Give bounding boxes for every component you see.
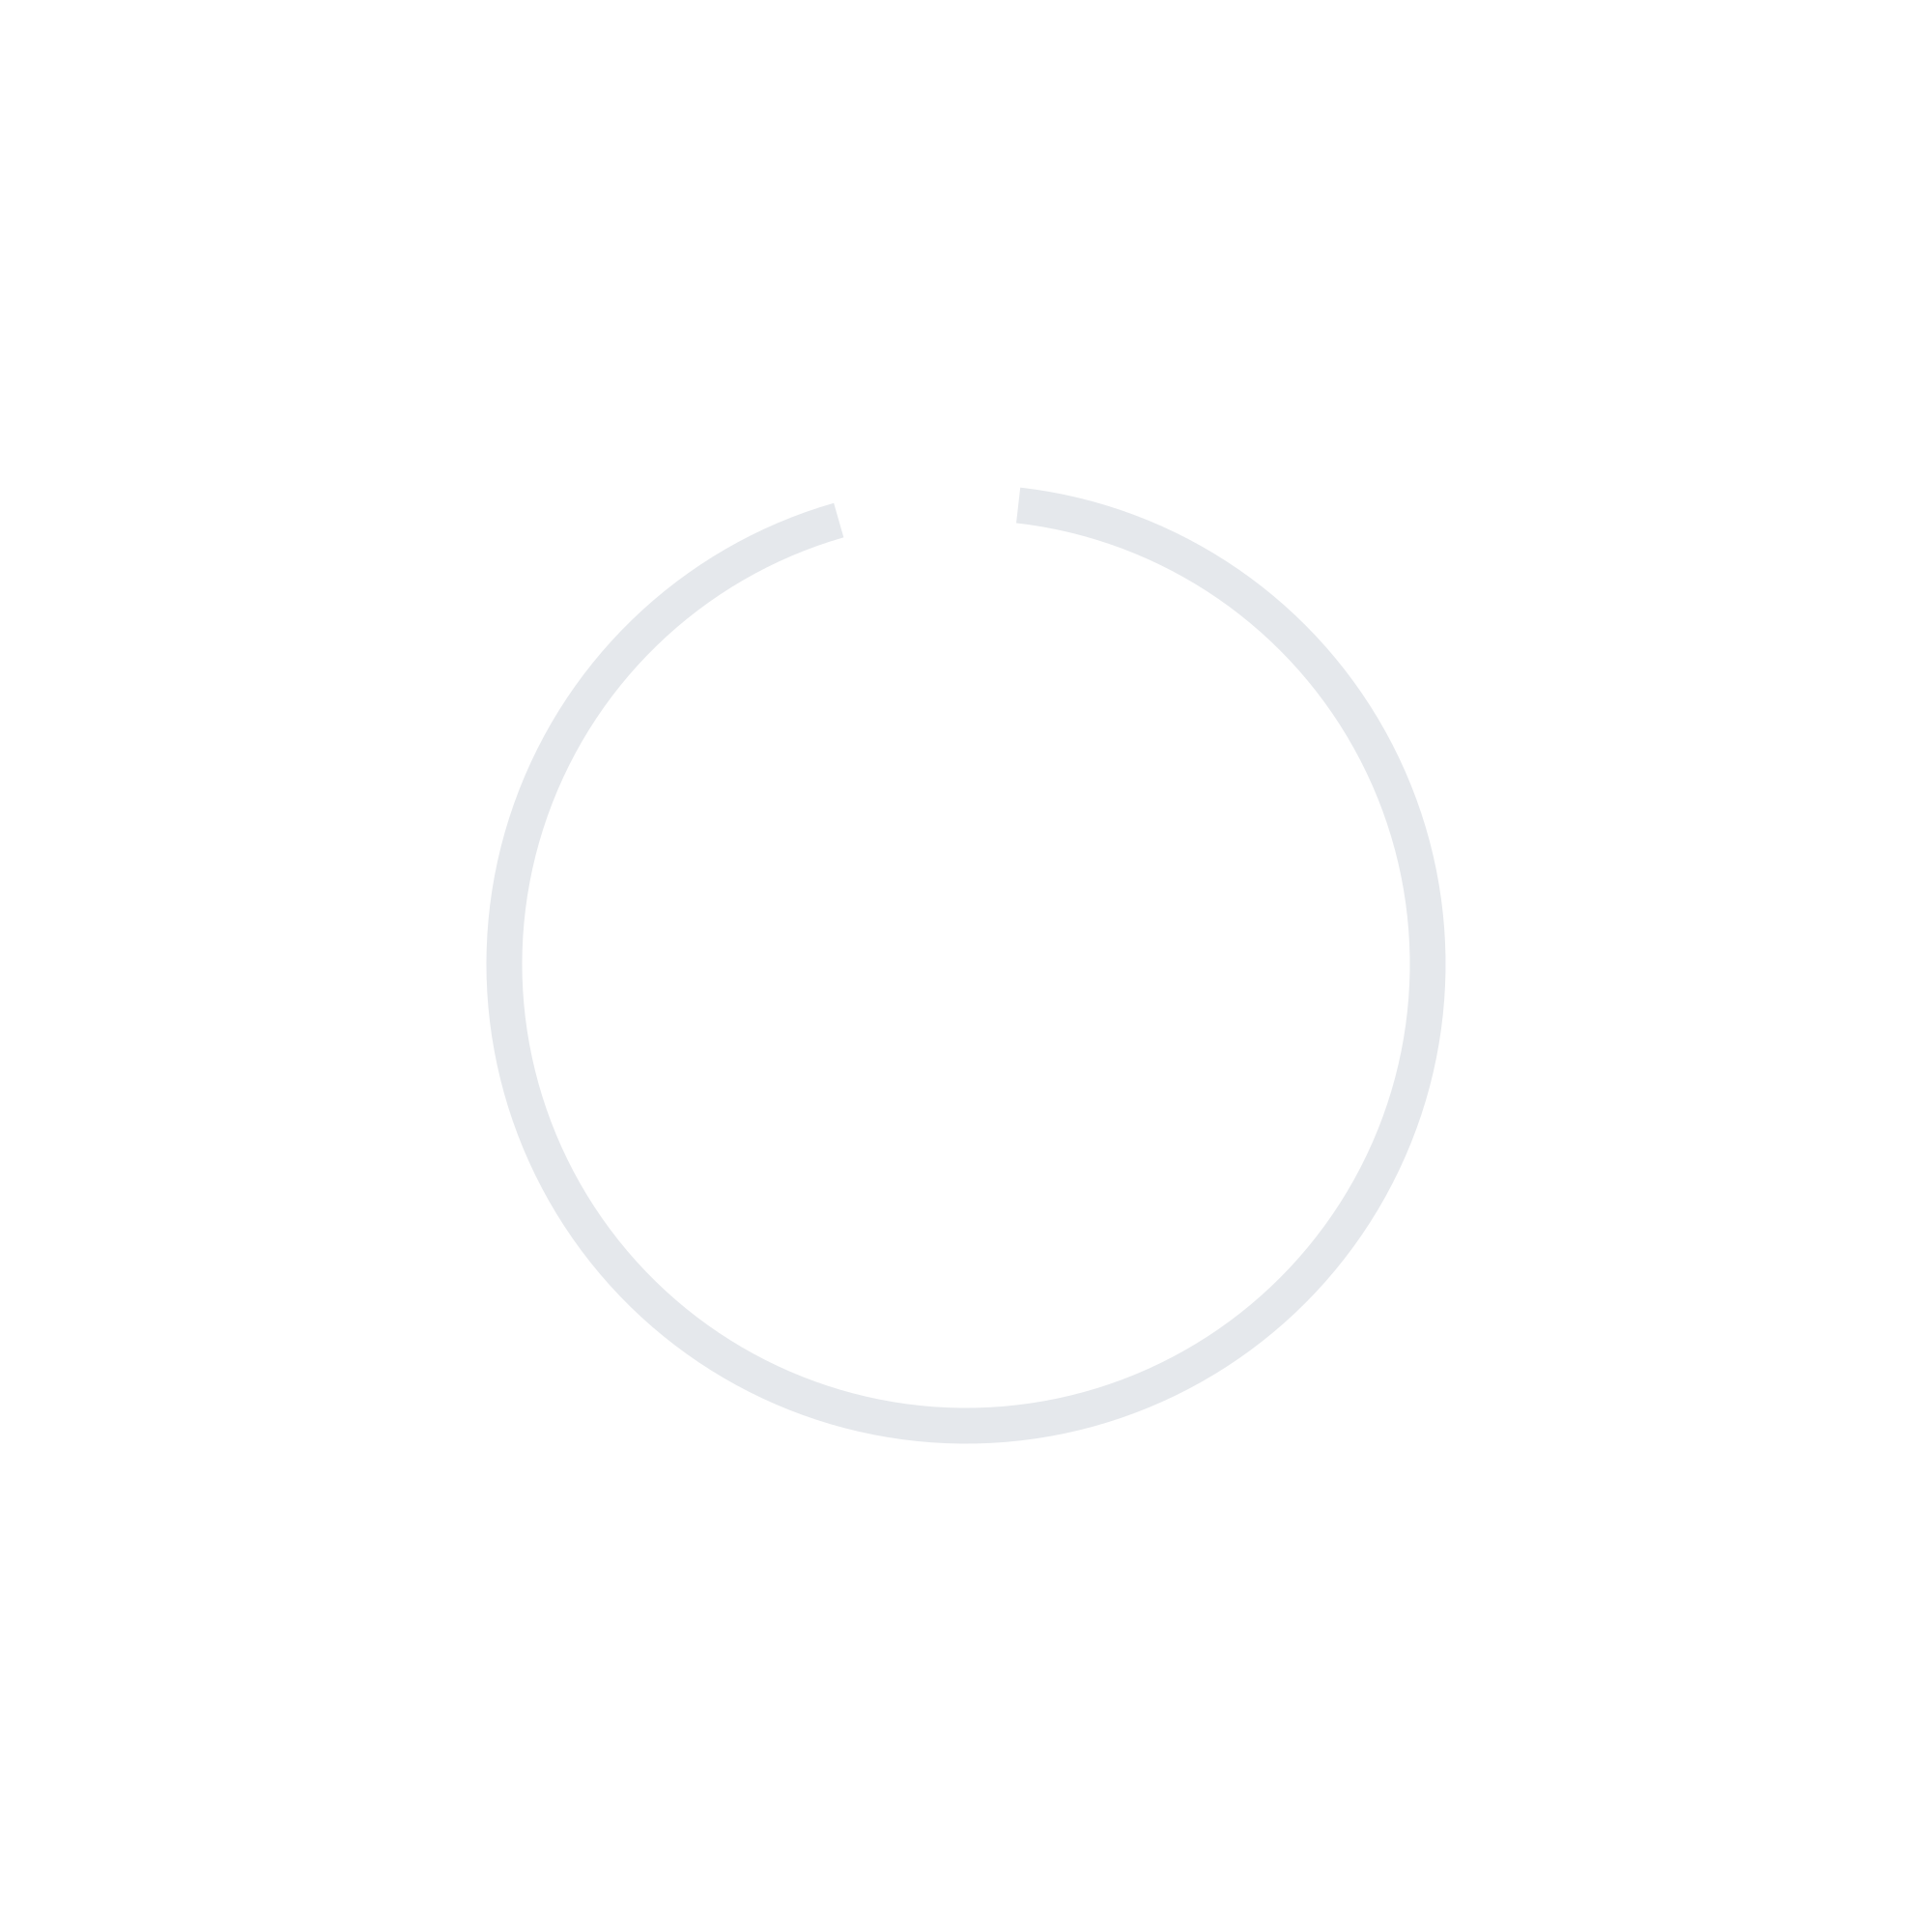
button[interactable]: Progress [0,0,1932,1932]
